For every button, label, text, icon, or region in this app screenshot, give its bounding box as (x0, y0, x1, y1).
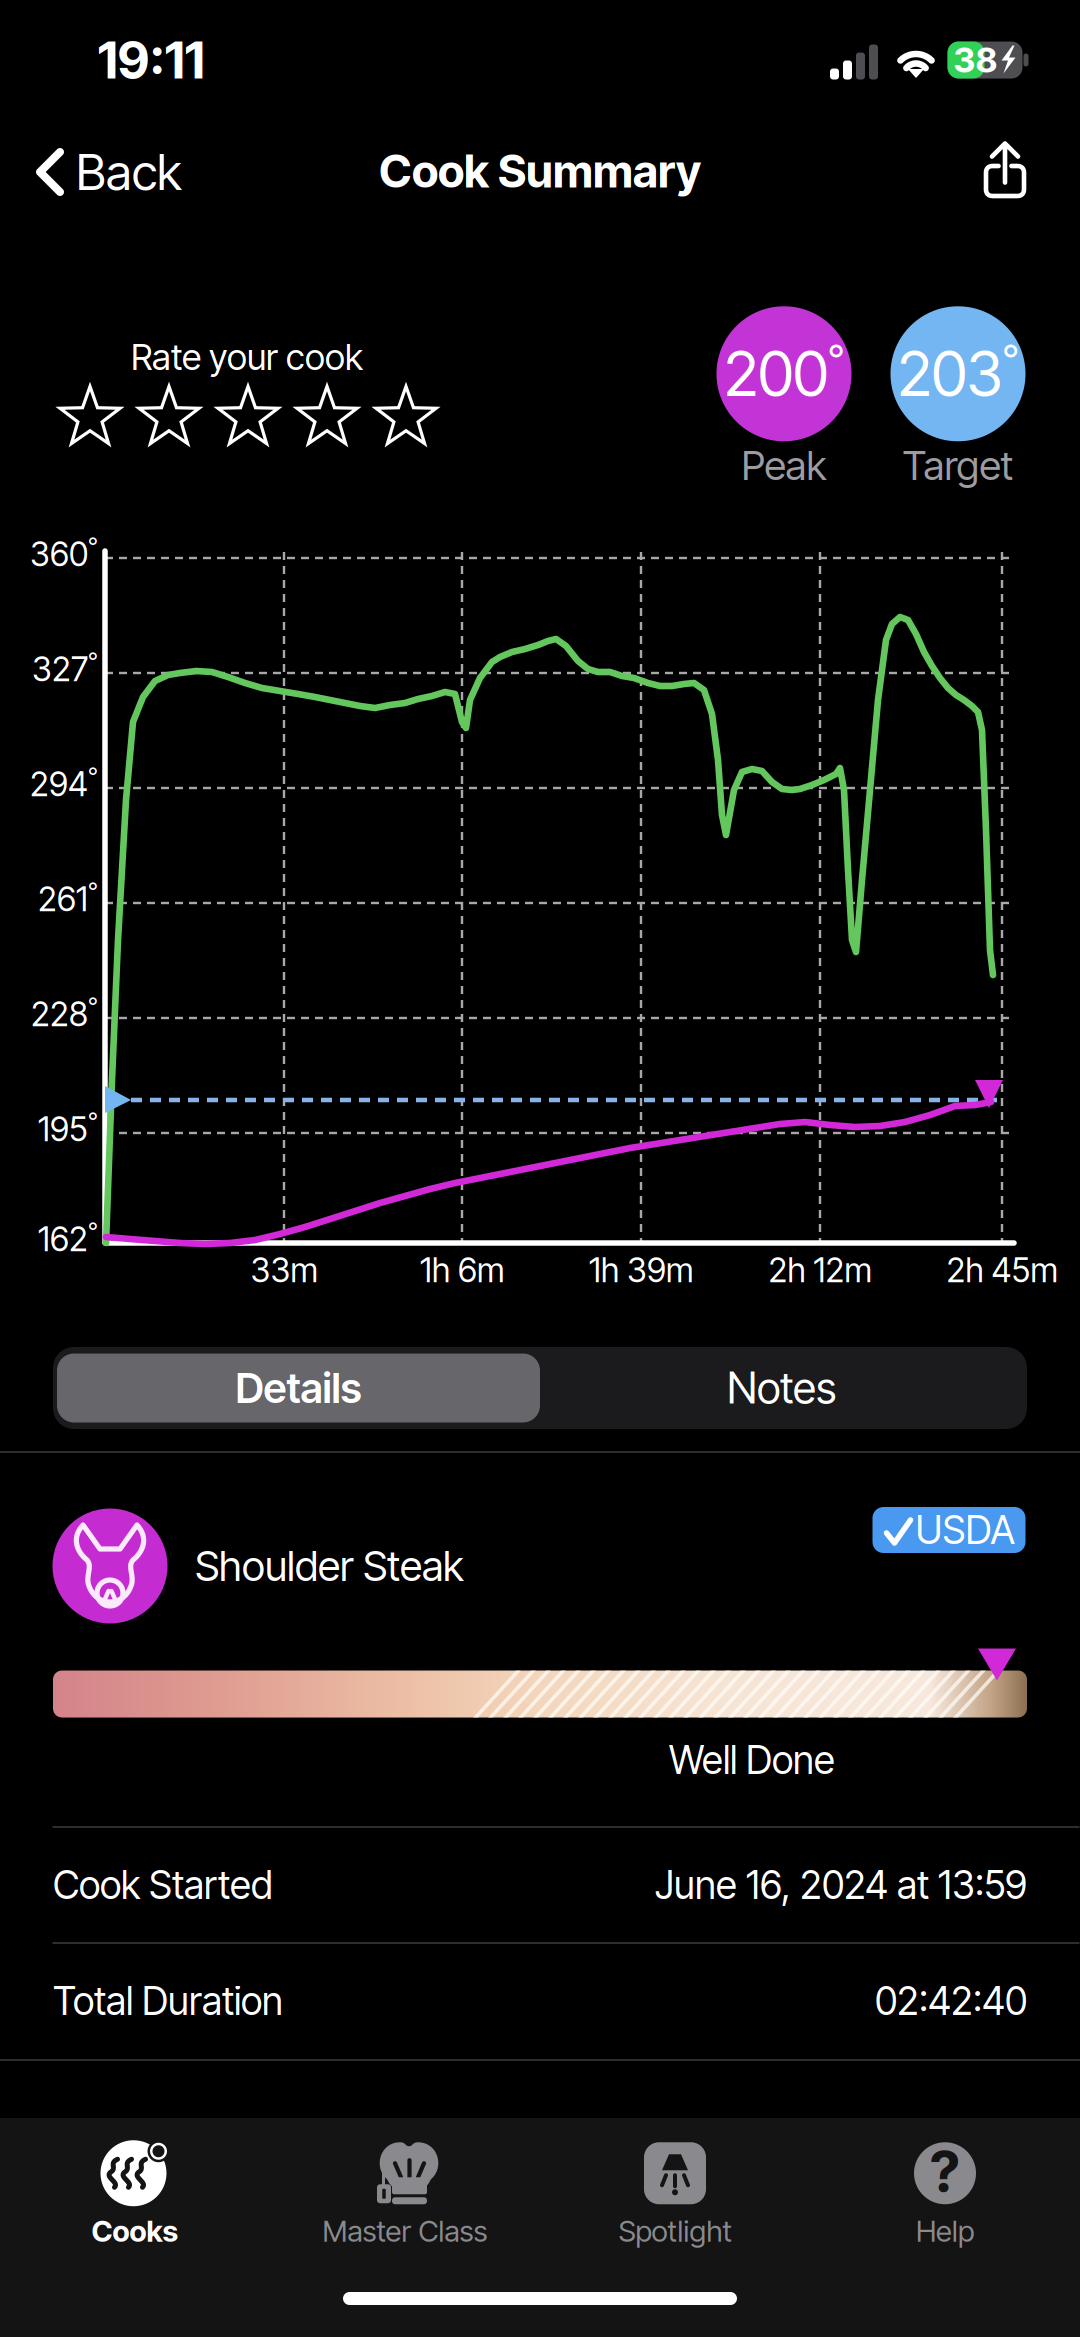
staticText: 02:42:40 (875, 1978, 1027, 2024)
button[interactable]: Cooks (0, 2132, 270, 2257)
staticText: Cook Started (53, 1862, 273, 1908)
staticText: ° (88, 647, 98, 676)
staticText: 294 (30, 764, 88, 804)
button[interactable]: Spotlight (540, 2132, 810, 2257)
staticText: Total Duration (53, 1978, 283, 2024)
staticText: ° (88, 1107, 98, 1136)
staticText: Rate your cook (131, 335, 363, 379)
staticText: Shoulder Steak (195, 1541, 464, 1591)
button[interactable]: 200 (716, 306, 851, 490)
staticText: Master Class (322, 2213, 487, 2249)
staticText: 33m (250, 1250, 317, 1290)
staticText: 327 (32, 649, 88, 689)
staticText: 19:11 (97, 29, 204, 91)
button[interactable]: Share (950, 120, 1060, 220)
staticText: 203 (897, 337, 1002, 411)
button[interactable]: Notes (540, 1353, 1023, 1422)
staticText: 2h 12m (768, 1250, 871, 1290)
staticText: ° (88, 762, 98, 791)
staticText: 2h 45m (946, 1250, 1057, 1290)
staticText: 195 (38, 1109, 88, 1149)
staticText: ° (828, 335, 844, 383)
staticText: Target (902, 441, 1013, 490)
staticText: Peak (741, 441, 826, 490)
staticText: ° (88, 532, 98, 561)
staticText: Cook Summary (379, 144, 701, 198)
staticText: 261 (38, 879, 88, 919)
staticText: 162 (38, 1219, 88, 1259)
staticText: Well Done (669, 1737, 835, 1783)
button[interactable]: Details (57, 1353, 540, 1422)
button[interactable]: 203 (890, 306, 1025, 490)
button[interactable]: ? (810, 2132, 1080, 2257)
staticText: Notes (727, 1362, 836, 1414)
button[interactable]: Master Class (270, 2132, 540, 2257)
staticText: Cooks (91, 2213, 178, 2249)
staticText: 1h 39m (589, 1250, 693, 1290)
staticText: 200 (724, 337, 828, 411)
staticText: USDA (915, 1507, 1014, 1553)
staticText: 360 (30, 534, 88, 574)
staticText: June 16, 2024 at 13:59 (655, 1862, 1027, 1908)
staticText: ° (88, 1217, 98, 1246)
staticText: Spotlight (618, 2213, 731, 2249)
staticText: ? (930, 2137, 960, 2205)
staticText: Help (916, 2213, 974, 2249)
staticText: Details (235, 1363, 361, 1413)
staticText: 228 (31, 994, 88, 1034)
staticText: 1h 6m (420, 1250, 504, 1290)
button[interactable]: Back (8, 122, 238, 222)
staticText: 38 (953, 39, 997, 81)
staticText: ° (88, 877, 98, 906)
staticText: ° (88, 992, 98, 1021)
staticText: Back (76, 142, 182, 202)
staticText: ° (1002, 335, 1018, 383)
